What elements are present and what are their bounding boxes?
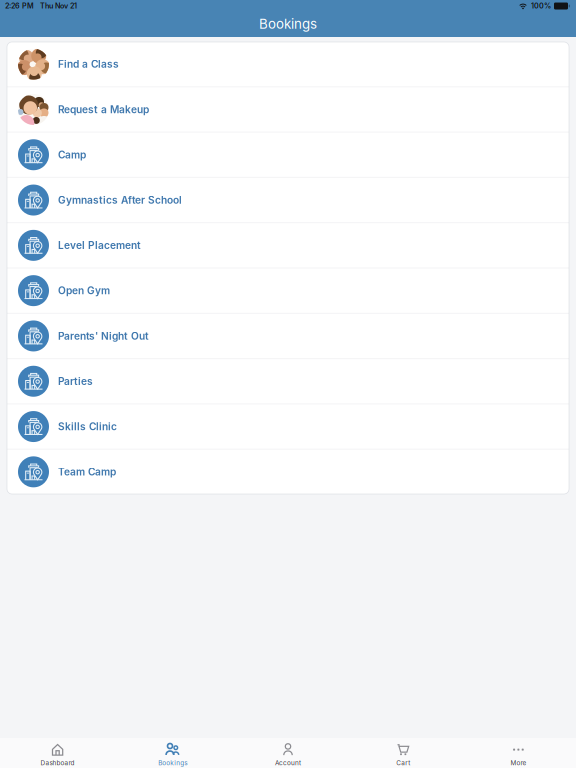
staticText: Level Placement: [58, 239, 141, 251]
button[interactable]: Account: [230, 736, 346, 768]
button[interactable]: Team Camp: [7, 450, 569, 494]
staticText: Find a Class: [58, 58, 119, 70]
button[interactable]: Parents' Night Out: [7, 314, 569, 359]
staticText: Thu Nov 21: [40, 2, 77, 10]
staticText: Dashboard: [41, 759, 75, 767]
button[interactable]: Find a Class: [7, 42, 569, 87]
staticText: More: [510, 759, 526, 767]
button[interactable]: Cart: [346, 736, 461, 768]
staticText: Account: [275, 759, 301, 767]
button[interactable]: Dashboard: [0, 736, 115, 768]
staticText: Parties: [58, 375, 93, 387]
button[interactable]: Level Placement: [7, 223, 569, 268]
staticText: Team Camp: [58, 466, 116, 478]
staticText: Cart: [396, 759, 410, 767]
staticText: 100%: [531, 2, 551, 10]
staticText: Open Gym: [58, 284, 110, 297]
staticText: Gymnastics After School: [58, 194, 182, 206]
button[interactable]: Bookings: [115, 736, 230, 768]
staticText: Camp: [58, 149, 86, 161]
button[interactable]: Camp: [7, 133, 569, 178]
staticText: Bookings: [259, 16, 317, 32]
button[interactable]: Gymnastics After School: [7, 178, 569, 223]
button[interactable]: Skills Clinic: [7, 404, 569, 450]
staticText: 2:26 PM: [5, 2, 34, 10]
button[interactable]: Open Gym: [7, 268, 569, 314]
staticText: Skills Clinic: [58, 420, 117, 433]
button[interactable]: More: [461, 736, 576, 768]
button[interactable]: Parties: [7, 359, 569, 404]
staticText: Parents' Night Out: [58, 330, 149, 342]
staticText: Request a Makeup: [58, 103, 149, 116]
button[interactable]: Request a Makeup: [7, 87, 569, 133]
staticText: Bookings: [158, 759, 187, 767]
